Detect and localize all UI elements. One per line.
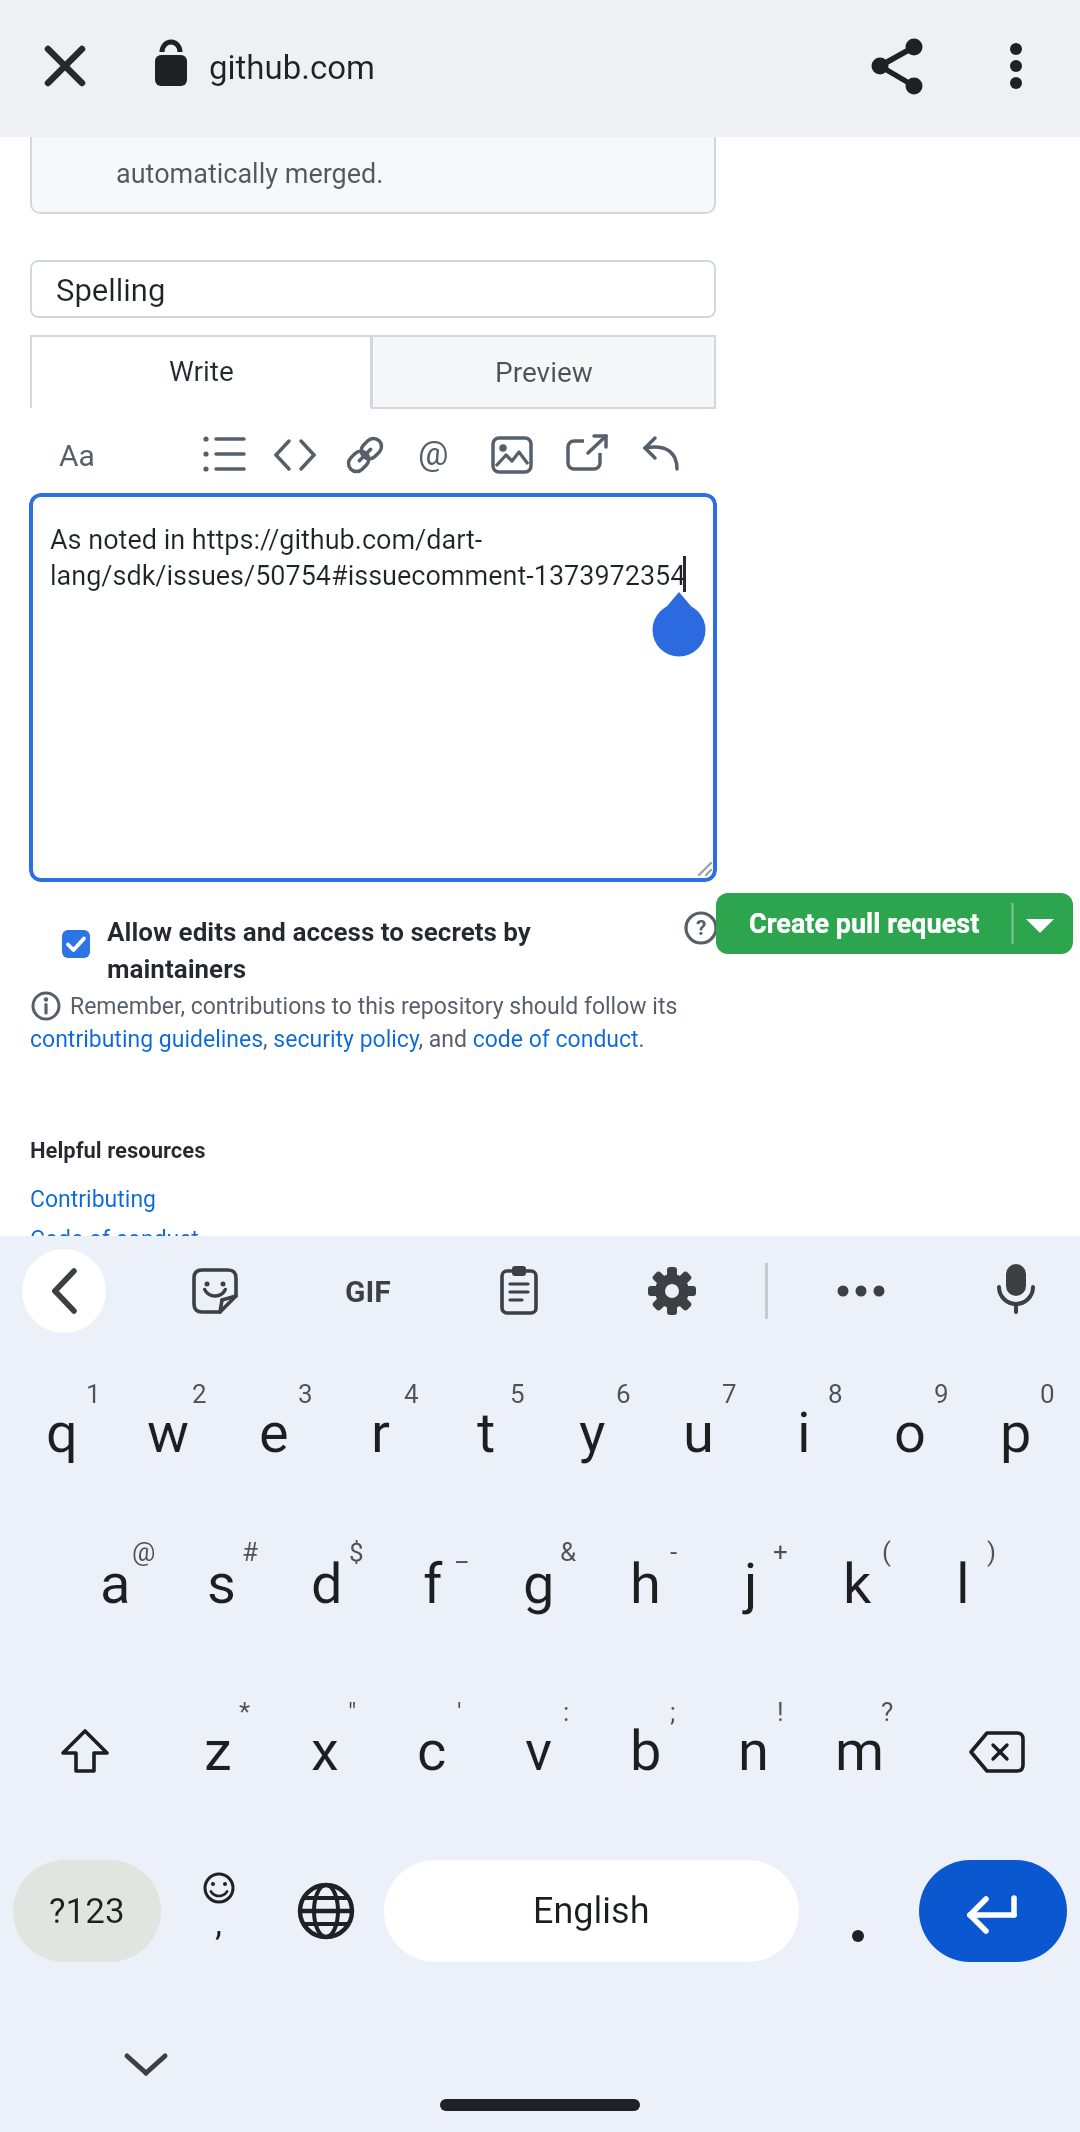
staticText: " <box>348 1697 357 1727</box>
staticText: s <box>207 1551 236 1617</box>
button[interactable] <box>646 1265 698 1317</box>
button[interactable]: l <box>911 1534 1015 1634</box>
staticText: k <box>843 1551 872 1617</box>
staticText: p <box>1000 1400 1032 1466</box>
staticText: a <box>100 1551 131 1617</box>
button[interactable]: t <box>434 1383 538 1483</box>
staticText: e <box>259 1400 289 1466</box>
staticText: t <box>477 1400 496 1466</box>
staticText: Code of conduct <box>30 1226 199 1253</box>
staticText: Allow edits and access to secrets by <box>107 917 531 947</box>
button[interactable]: d <box>275 1534 379 1634</box>
button[interactable] <box>497 1266 541 1316</box>
button[interactable] <box>343 433 387 477</box>
button[interactable]: Aa <box>42 425 112 485</box>
button[interactable]: Contributing <box>30 1186 157 1213</box>
button[interactable] <box>29 493 717 882</box>
button[interactable] <box>967 1729 1025 1775</box>
button[interactable]: m <box>808 1701 912 1801</box>
staticText: ? <box>881 1697 894 1727</box>
button[interactable]: Code of conduct <box>30 1226 199 1253</box>
button[interactable] <box>30 260 716 318</box>
button[interactable]: f <box>381 1534 485 1634</box>
button[interactable] <box>38 39 92 93</box>
staticText: b <box>630 1718 662 1784</box>
button[interactable]: h <box>593 1534 697 1634</box>
staticText: 3 <box>298 1379 313 1409</box>
button[interactable] <box>22 1249 106 1333</box>
staticText: , <box>215 1902 223 1942</box>
button[interactable] <box>992 1262 1040 1320</box>
staticText: d <box>311 1551 343 1617</box>
button[interactable]: @ <box>403 423 463 483</box>
button[interactable] <box>919 1860 1067 1962</box>
staticText: ) <box>987 1537 997 1567</box>
staticText: : <box>563 1697 570 1727</box>
button[interactable] <box>61 1729 109 1777</box>
button[interactable]: a <box>63 1534 167 1634</box>
button[interactable]: u <box>646 1383 750 1483</box>
button[interactable]: p <box>964 1383 1068 1483</box>
staticText: w <box>147 1400 190 1466</box>
button[interactable]: Write <box>30 335 372 408</box>
button[interactable]: s <box>169 1534 273 1634</box>
staticText: Remember, contributions to this reposito… <box>70 993 678 1020</box>
button[interactable]: y <box>540 1383 644 1483</box>
button[interactable] <box>62 930 90 958</box>
staticText: 9 <box>934 1379 949 1409</box>
button[interactable] <box>566 435 610 475</box>
button[interactable]: k <box>805 1534 909 1634</box>
button[interactable]: ? <box>683 910 719 946</box>
button[interactable]: contributing guidelines, security policy… <box>30 1026 645 1053</box>
button[interactable]: j <box>699 1534 803 1634</box>
button[interactable]: English <box>384 1860 799 1962</box>
button[interactable]: Create pull request <box>716 893 1012 954</box>
button[interactable]: x <box>273 1701 377 1801</box>
button[interactable] <box>835 1265 887 1317</box>
button[interactable]: r <box>328 1383 432 1483</box>
button[interactable] <box>1012 893 1073 954</box>
staticText: i <box>797 1400 811 1466</box>
button[interactable]: v <box>487 1701 591 1801</box>
button[interactable] <box>992 33 1040 99</box>
staticText: @ <box>418 433 449 473</box>
staticText: + <box>773 1537 788 1567</box>
button[interactable]: q <box>10 1383 114 1483</box>
staticText: o <box>894 1400 926 1466</box>
button[interactable] <box>273 433 317 477</box>
button[interactable]: i <box>752 1383 856 1483</box>
staticText: GIF <box>345 1274 391 1309</box>
button[interactable]: n <box>701 1701 805 1801</box>
staticText: 6 <box>616 1379 631 1409</box>
staticText: u <box>683 1400 714 1466</box>
button[interactable] <box>296 1881 356 1941</box>
button[interactable] <box>192 1268 238 1314</box>
staticText: maintainers <box>107 954 247 984</box>
button[interactable]: g <box>487 1534 591 1634</box>
staticText: c <box>417 1718 447 1784</box>
staticText: 0 <box>1040 1379 1055 1409</box>
button[interactable]: , <box>189 1860 249 1962</box>
staticText: - <box>670 1537 678 1567</box>
button[interactable] <box>491 435 535 475</box>
button[interactable]: w <box>116 1383 220 1483</box>
staticText: Helpful resources <box>30 1138 206 1164</box>
button[interactable]: b <box>594 1701 698 1801</box>
button[interactable] <box>116 2040 176 2084</box>
staticText: h <box>630 1551 661 1617</box>
button[interactable]: GIF <box>323 1256 413 1326</box>
button[interactable]: z <box>166 1701 270 1801</box>
staticText: l <box>956 1551 970 1617</box>
button[interactable] <box>866 33 932 99</box>
button[interactable]: o <box>858 1383 962 1483</box>
staticText: # <box>242 1537 259 1567</box>
button[interactable]: ?123 <box>13 1860 161 1962</box>
button[interactable] <box>641 435 685 475</box>
staticText: m <box>835 1718 885 1784</box>
button[interactable]: Preview <box>371 335 716 409</box>
button[interactable]: e <box>222 1383 326 1483</box>
button[interactable] <box>203 433 247 477</box>
button[interactable]: c <box>380 1701 484 1801</box>
staticText: @ <box>132 1537 156 1567</box>
button[interactable] <box>828 1881 888 1941</box>
